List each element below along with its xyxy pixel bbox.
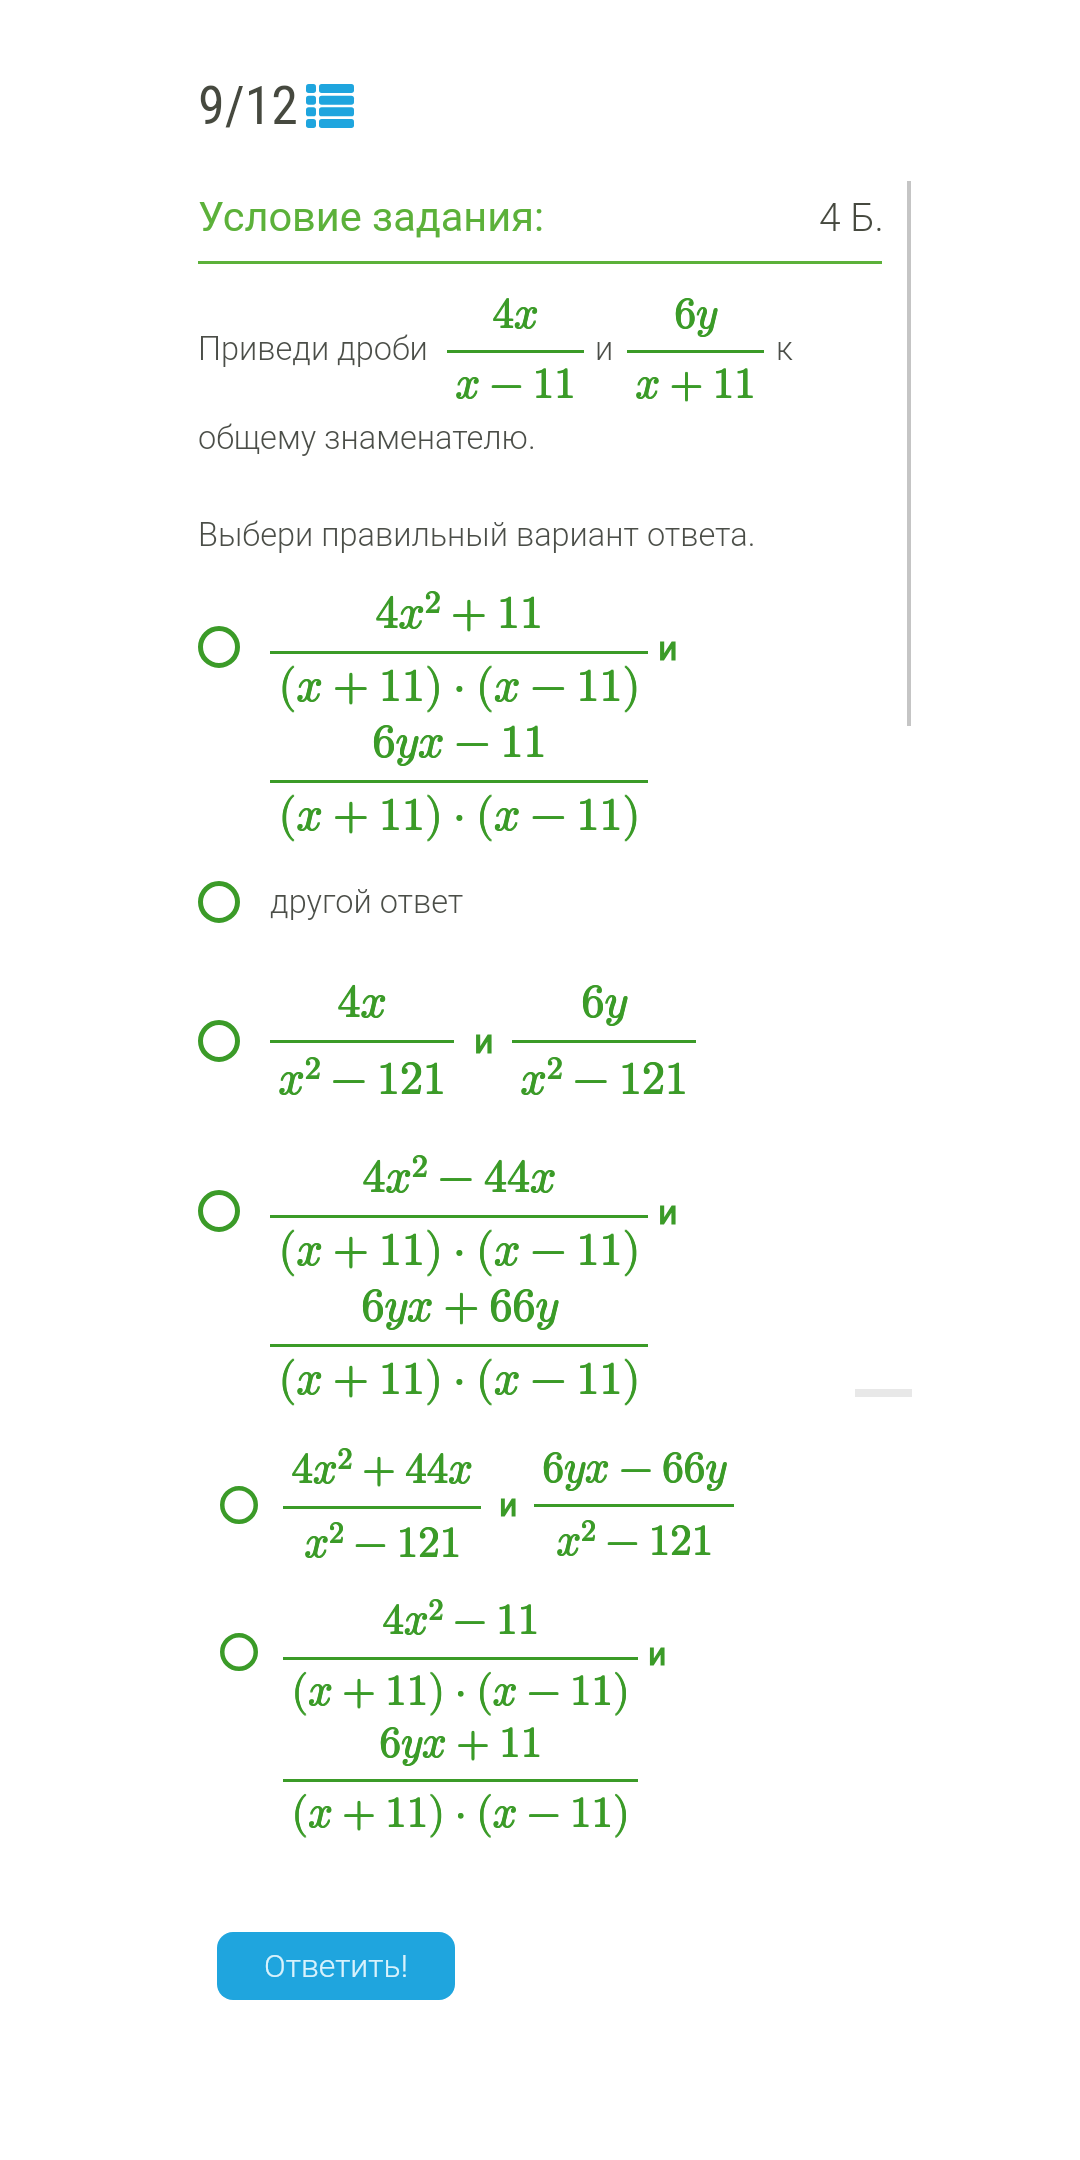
staticText: 6𝑦𝑥 + 66𝑦 xyxy=(362,1283,559,1329)
staticText: 4𝑥2 − 44𝑥 xyxy=(362,1150,556,1200)
staticText: (𝑥 + 11) · (𝑥 − 11) xyxy=(292,1791,631,1834)
staticText: 𝑥2 − 121 xyxy=(304,1519,461,1566)
staticText: Выбери правильный вариант ответа. xyxy=(198,516,756,554)
staticText: 𝑥2 − 121 xyxy=(520,1052,688,1102)
staticText: 4𝑥2 + 44𝑥 xyxy=(292,1444,474,1491)
staticText: 𝑥 − 11 xyxy=(456,362,577,405)
staticText: 6𝑦 xyxy=(675,292,718,335)
staticText: 6𝑦𝑥 − 11 xyxy=(373,720,548,766)
staticText: 𝑥2 − 121 xyxy=(278,1053,446,1103)
staticText: 𝑥2 − 121 xyxy=(556,1517,713,1564)
staticText: (𝑥 + 11) · (𝑥 − 11) xyxy=(291,1670,630,1713)
staticText: и xyxy=(648,1635,667,1673)
staticText: (𝑥 + 11) · (𝑥 − 11) xyxy=(278,1357,640,1403)
staticText: 6𝑦𝑥 − 66𝑦 xyxy=(543,1447,727,1490)
staticText: (𝑥 + 11) · (𝑥 − 11) xyxy=(279,1356,641,1402)
staticText: 𝑥2 − 121 xyxy=(557,1516,714,1563)
staticText: 4𝑥2 + 44𝑥 xyxy=(291,1445,473,1492)
staticText: 4𝑥2 − 11 xyxy=(382,1595,539,1642)
staticText: 𝑥2 − 121 xyxy=(557,1517,714,1564)
staticText: к xyxy=(776,330,793,368)
staticText: (𝑥 + 11) · (𝑥 − 11) xyxy=(278,664,640,710)
staticText: и xyxy=(499,1486,518,1524)
staticText: (𝑥 + 11) · (𝑥 − 11) xyxy=(278,663,640,709)
staticText: 6𝑦𝑥 + 11 xyxy=(379,1722,542,1765)
staticText: 6𝑦𝑥 + 66𝑦 xyxy=(362,1284,559,1330)
staticText: 4𝑥 xyxy=(337,979,387,1025)
staticText: (𝑥 + 11) · (𝑥 − 11) xyxy=(292,1792,631,1835)
staticText: 6𝑦 xyxy=(582,979,628,1025)
staticText: 4𝑥2 − 11 xyxy=(383,1596,540,1643)
staticText: 6𝑦𝑥 − 11 xyxy=(372,720,547,766)
button[interactable]: 4𝑥2 − 11 xyxy=(220,1595,667,1834)
staticText: 𝑥 + 11 xyxy=(636,363,757,406)
staticText: (𝑥 + 11) · (𝑥 − 11) xyxy=(291,1669,630,1712)
button[interactable]: Question list xyxy=(198,74,320,137)
staticText: 6𝑦 xyxy=(674,292,717,335)
staticText: (𝑥 + 11) · (𝑥 − 11) xyxy=(291,1792,630,1835)
staticText: 6𝑦 xyxy=(674,293,717,336)
button[interactable]: 4𝑥2 + 44𝑥 xyxy=(220,1444,734,1565)
staticText: 𝑥 + 11 xyxy=(635,363,756,406)
staticText: и xyxy=(658,628,678,668)
staticText: Условие задания: xyxy=(198,192,545,241)
staticText: 4𝑥2 − 44𝑥 xyxy=(363,1150,557,1200)
staticText: 4𝑥2 + 11 xyxy=(375,587,543,637)
staticText: 6𝑦 xyxy=(581,979,627,1025)
staticText: Ответить! xyxy=(264,1947,408,1985)
staticText: 𝑥 + 11 xyxy=(636,362,757,405)
staticText: 𝑥2 − 121 xyxy=(305,1518,462,1565)
staticText: (𝑥 + 11) · (𝑥 − 11) xyxy=(292,1669,631,1712)
staticText: 4𝑥2 + 11 xyxy=(375,586,543,636)
staticText: (𝑥 + 11) · (𝑥 − 11) xyxy=(291,1791,630,1834)
staticText: и xyxy=(658,1192,678,1232)
staticText: 6𝑦 xyxy=(582,980,628,1026)
staticText: 6𝑦𝑥 + 11 xyxy=(380,1722,543,1765)
button[interactable]: 4𝑥2 − 44𝑥 xyxy=(198,1150,678,1402)
staticText: 6𝑦𝑥 + 11 xyxy=(380,1721,543,1764)
staticText: другой ответ xyxy=(270,883,464,921)
staticText: 4𝑥2 − 44𝑥 xyxy=(362,1151,556,1201)
staticText: (𝑥 + 11) · (𝑥 − 11) xyxy=(279,792,641,838)
staticText: 𝑥2 − 121 xyxy=(521,1053,689,1103)
staticText: общему знаменателю. xyxy=(198,419,536,457)
staticText: 𝑥2 − 121 xyxy=(278,1052,446,1102)
staticText: 𝑥2 − 121 xyxy=(520,1053,688,1103)
staticText: (𝑥 + 11) · (𝑥 − 11) xyxy=(278,1228,640,1274)
staticText: 4𝑥2 − 11 xyxy=(383,1595,540,1642)
staticText: 4𝑥 xyxy=(492,292,539,335)
staticText: 6𝑦𝑥 − 11 xyxy=(372,719,547,765)
staticText: (𝑥 + 11) · (𝑥 − 11) xyxy=(279,664,641,710)
staticText: 6𝑦 xyxy=(581,980,627,1026)
staticText: 6𝑦𝑥 − 66𝑦 xyxy=(542,1447,726,1490)
button[interactable]: 4𝑥 xyxy=(198,979,696,1102)
staticText: 6𝑦𝑥 + 11 xyxy=(379,1721,542,1764)
staticText: 4𝑥 xyxy=(492,293,539,336)
staticText: 𝑥2 − 121 xyxy=(556,1516,713,1563)
staticText: (𝑥 + 11) · (𝑥 − 11) xyxy=(278,1227,640,1273)
staticText: 6𝑦𝑥 − 66𝑦 xyxy=(543,1446,727,1489)
staticText: 4𝑥 xyxy=(338,980,388,1026)
staticText: и xyxy=(474,1021,494,1061)
staticText: 4𝑥2 + 11 xyxy=(376,586,544,636)
staticText: 𝑥 − 11 xyxy=(456,363,577,406)
button[interactable]: другой ответ xyxy=(198,881,464,923)
staticText: 6𝑦𝑥 + 66𝑦 xyxy=(361,1283,558,1329)
staticText: (𝑥 + 11) · (𝑥 − 11) xyxy=(279,1227,641,1273)
button[interactable]: 4𝑥2 + 11 xyxy=(198,586,678,838)
staticText: 4𝑥2 + 44𝑥 xyxy=(292,1445,474,1492)
staticText: (𝑥 + 11) · (𝑥 − 11) xyxy=(279,1228,641,1274)
staticText: 4𝑥 xyxy=(493,292,540,335)
staticText: (𝑥 + 11) · (𝑥 − 11) xyxy=(292,1670,631,1713)
staticText: 4𝑥 xyxy=(337,980,387,1026)
staticText: 9/12 xyxy=(198,74,299,137)
staticText: 4 Б. xyxy=(819,195,884,241)
staticText: (𝑥 + 11) · (𝑥 − 11) xyxy=(278,1356,640,1402)
staticText: Приведи дроби xyxy=(198,330,428,368)
staticText: 4𝑥 xyxy=(338,979,388,1025)
staticText: (𝑥 + 11) · (𝑥 − 11) xyxy=(279,793,641,839)
staticText: 𝑥2 − 121 xyxy=(521,1052,689,1102)
staticText: 𝑥2 − 121 xyxy=(304,1518,461,1565)
button[interactable]: Ответить! xyxy=(217,1932,455,2000)
staticText: (𝑥 + 11) · (𝑥 − 11) xyxy=(278,792,640,838)
